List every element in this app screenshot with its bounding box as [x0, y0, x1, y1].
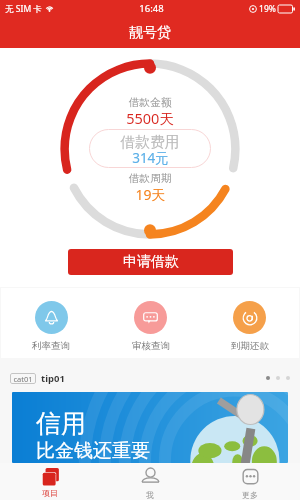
staticText: 利率查询 [32, 340, 70, 352]
staticText: 无 SIM 卡 [5, 3, 42, 15]
staticText: 项目 [42, 488, 58, 498]
staticText: 我 [146, 490, 154, 500]
button[interactable]: 利率查询 [1, 288, 101, 358]
staticText: 靓号贷 [129, 24, 171, 42]
button[interactable]: 申请借款 [68, 249, 233, 275]
staticText: cat01 [13, 374, 33, 384]
staticText: 借款周期 [128, 172, 172, 186]
staticText: 19天 [135, 185, 166, 204]
staticText: 314元 [132, 149, 169, 167]
staticText: 信用 [36, 408, 86, 439]
button[interactable]: 到期还款 [200, 288, 299, 358]
staticText: 16:48 [139, 2, 164, 15]
staticText: 借款费用 [120, 133, 180, 152]
staticText: 5500天 [126, 108, 174, 128]
staticText: 借款金额 [128, 96, 172, 110]
staticText: 到期还款 [231, 340, 269, 352]
staticText: 审核查询 [132, 340, 170, 352]
button[interactable]: 项目 [0, 463, 100, 500]
button[interactable]: 审核查询 [101, 288, 200, 358]
staticText: 19% [259, 3, 276, 15]
staticText: 更多 [242, 490, 258, 500]
button[interactable]: 我 [100, 463, 200, 500]
staticText: 申请借款 [123, 253, 179, 271]
staticText: 比金钱还重要 [36, 439, 150, 463]
staticText: tip01 [41, 372, 65, 385]
button[interactable]: 更多 [200, 463, 300, 500]
